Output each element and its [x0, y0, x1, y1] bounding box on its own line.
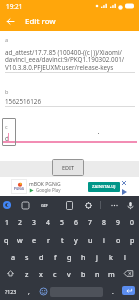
button[interactable]: 8	[97, 214, 111, 231]
button[interactable]: n	[90, 265, 104, 282]
button[interactable]: l	[118, 248, 132, 265]
staticText: GIF	[41, 203, 48, 209]
staticText: n	[95, 269, 100, 279]
button[interactable]: 7	[83, 214, 97, 231]
button[interactable]: ZAINSTALUJ	[88, 182, 120, 192]
staticText: j	[96, 252, 98, 262]
button[interactable]: b	[76, 265, 90, 282]
button[interactable]: x	[34, 265, 48, 282]
button[interactable]	[2, 118, 16, 146]
staticText: b	[81, 269, 86, 279]
button[interactable]: t	[55, 231, 69, 248]
staticText: 5	[60, 218, 64, 227]
staticText: .	[112, 287, 114, 296]
staticText: t	[61, 235, 64, 245]
button[interactable]: Shift	[0, 265, 20, 282]
button[interactable]: Voice input	[126, 201, 135, 210]
button[interactable]: h	[76, 248, 90, 265]
button[interactable]: z	[20, 265, 34, 282]
staticText: 6	[74, 218, 78, 227]
button[interactable]: q	[0, 231, 13, 248]
button[interactable]: 4	[41, 214, 55, 231]
button[interactable]: y	[69, 231, 83, 248]
button[interactable]: Clipboard	[65, 201, 74, 210]
staticText: c	[5, 123, 8, 130]
button[interactable]: ,	[22, 282, 36, 300]
button[interactable]: Backspace	[118, 265, 139, 282]
button[interactable]: GIF	[40, 201, 49, 210]
staticText: e	[32, 235, 37, 245]
button[interactable]: Enter	[122, 286, 135, 295]
staticText: Edit row	[25, 16, 56, 27]
button[interactable]: j	[90, 248, 104, 265]
staticText: b	[5, 88, 9, 95]
staticText: q	[4, 235, 9, 245]
staticText: w	[17, 235, 23, 245]
staticText: d	[5, 134, 9, 143]
button[interactable]: .	[107, 282, 119, 300]
staticText: k	[109, 252, 113, 262]
staticText: ?123	[5, 288, 17, 295]
button[interactable]: 2	[13, 214, 27, 231]
staticText: ,	[28, 287, 30, 296]
button[interactable]: 9	[111, 214, 125, 231]
staticText: f	[54, 252, 57, 262]
staticText: o	[116, 235, 121, 245]
staticText: d	[39, 252, 44, 262]
button[interactable]: c	[48, 265, 62, 282]
staticText: 1	[5, 218, 9, 227]
staticText: 3	[32, 218, 36, 227]
button[interactable]: f	[48, 248, 62, 265]
button[interactable]: Settings	[84, 201, 93, 210]
staticText: g	[67, 252, 72, 262]
button[interactable]: Google search	[3, 201, 11, 209]
button[interactable]: o	[111, 231, 125, 248]
staticText: a	[11, 252, 16, 262]
staticText: p	[130, 235, 135, 245]
staticText: i	[103, 235, 105, 245]
staticText: Google Play	[36, 187, 61, 193]
staticText: v	[67, 269, 71, 279]
button[interactable]: 6	[69, 214, 83, 231]
staticText: 0	[130, 218, 134, 227]
button[interactable]: k	[104, 248, 118, 265]
button[interactable]: a	[7, 248, 20, 265]
staticText: m	[108, 269, 115, 279]
button[interactable]: u	[83, 231, 97, 248]
staticText: 9	[116, 218, 120, 227]
button[interactable]: More	[110, 201, 119, 210]
button[interactable]: s	[20, 248, 34, 265]
button[interactable]: 0	[125, 214, 139, 231]
staticText: 1562516126	[5, 97, 42, 106]
button[interactable]: ?123	[0, 282, 22, 300]
staticText: ZAINSTALUJ	[92, 184, 116, 190]
button[interactable]: v	[62, 265, 76, 282]
staticText: z	[25, 269, 29, 279]
staticText: y	[74, 235, 78, 245]
staticText: ad_attest/17.7.85 (100400-((c|))/Xiaomi/…	[5, 48, 136, 72]
button[interactable]: p	[125, 231, 139, 248]
staticText: mBOK PGNiG	[29, 181, 61, 188]
button[interactable]: 1	[0, 214, 13, 231]
button[interactable]: 3	[27, 214, 41, 231]
button[interactable]: Back	[0, 12, 20, 31]
button[interactable]: Emoji	[36, 282, 50, 300]
staticText: EDIT	[62, 164, 75, 171]
button[interactable]: m	[104, 265, 118, 282]
staticText: s	[25, 252, 29, 262]
staticText: c	[53, 269, 57, 279]
button[interactable]: r	[41, 231, 55, 248]
button[interactable]: e	[27, 231, 41, 248]
other: Close ad	[121, 180, 129, 192]
button[interactable]: Stickers	[21, 201, 30, 210]
button[interactable]: g	[62, 248, 76, 265]
button[interactable]: i	[97, 231, 111, 248]
staticText: 7	[88, 218, 92, 227]
button[interactable]: 5	[55, 214, 69, 231]
staticText: 4	[46, 218, 50, 227]
button[interactable]: w	[13, 231, 27, 248]
button[interactable]: d	[34, 248, 48, 265]
button[interactable]: EDIT	[52, 159, 84, 176]
staticText: h	[81, 252, 86, 262]
